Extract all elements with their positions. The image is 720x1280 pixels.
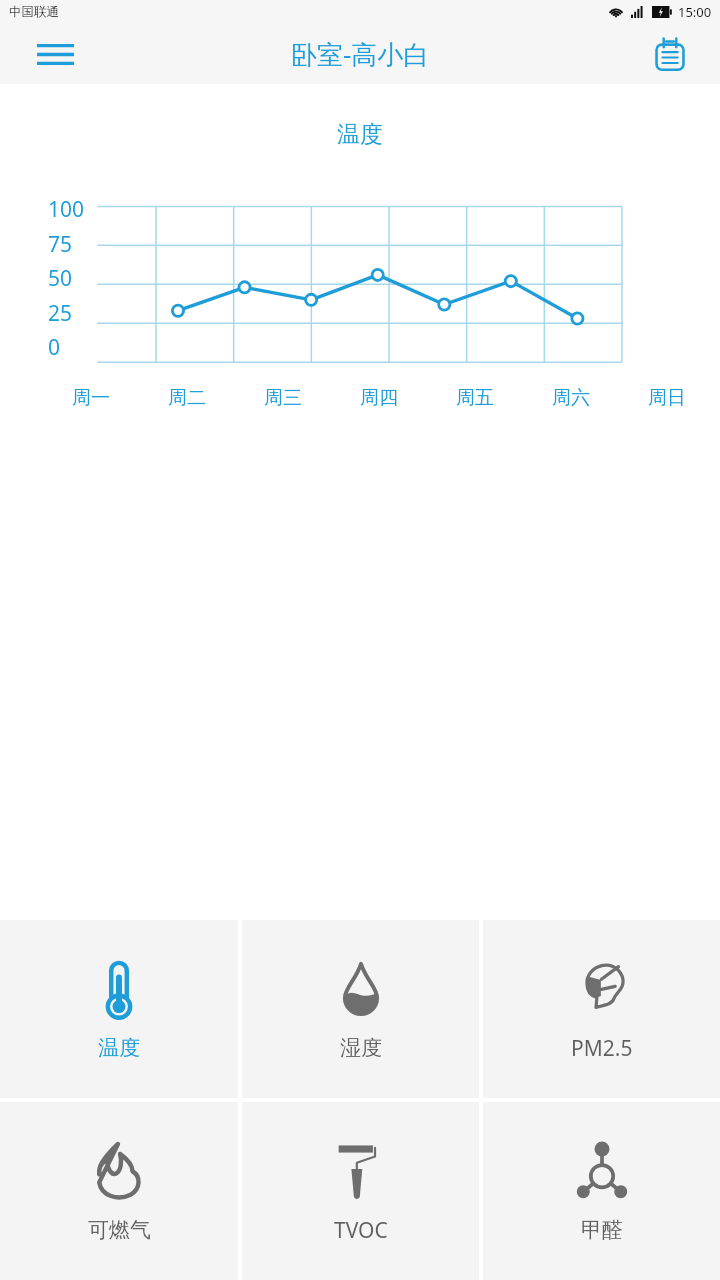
staticText: PM2.5 bbox=[571, 1034, 633, 1063]
staticText: 温度 bbox=[98, 1035, 140, 1061]
button[interactable]: 可燃气 bbox=[0, 1102, 238, 1280]
button[interactable]: TVOC bbox=[242, 1102, 479, 1280]
staticText: 周三 bbox=[264, 386, 302, 410]
staticText: 湿度 bbox=[340, 1035, 382, 1061]
staticText: 可燃气 bbox=[88, 1217, 151, 1243]
staticText: TVOC bbox=[334, 1216, 388, 1245]
staticText: 100 bbox=[48, 195, 85, 224]
staticText: 25 bbox=[48, 299, 73, 328]
button[interactable]: 温度 bbox=[0, 920, 238, 1098]
staticText: 温度 bbox=[0, 120, 720, 149]
staticText: 15:00 bbox=[678, 3, 712, 21]
button[interactable]: PM2.5 bbox=[483, 920, 720, 1098]
staticText: 周五 bbox=[456, 386, 494, 410]
staticText: 周二 bbox=[168, 386, 206, 410]
button[interactable]: 湿度 bbox=[242, 920, 479, 1098]
staticText: 50 bbox=[48, 264, 73, 293]
staticText: 75 bbox=[48, 230, 73, 259]
staticText: 周四 bbox=[360, 386, 398, 410]
staticText: 周六 bbox=[552, 386, 590, 410]
staticText: 甲醛 bbox=[581, 1217, 623, 1243]
staticText: 周一 bbox=[72, 386, 110, 410]
staticText: 中国联通 bbox=[9, 4, 59, 20]
staticText: 0 bbox=[48, 333, 61, 362]
staticText: 周日 bbox=[648, 386, 686, 410]
button[interactable]: Records bbox=[642, 26, 698, 82]
button[interactable]: Menu bbox=[26, 25, 84, 83]
button[interactable]: 甲醛 bbox=[483, 1102, 720, 1280]
staticText: 卧室-高小白 bbox=[291, 36, 430, 72]
